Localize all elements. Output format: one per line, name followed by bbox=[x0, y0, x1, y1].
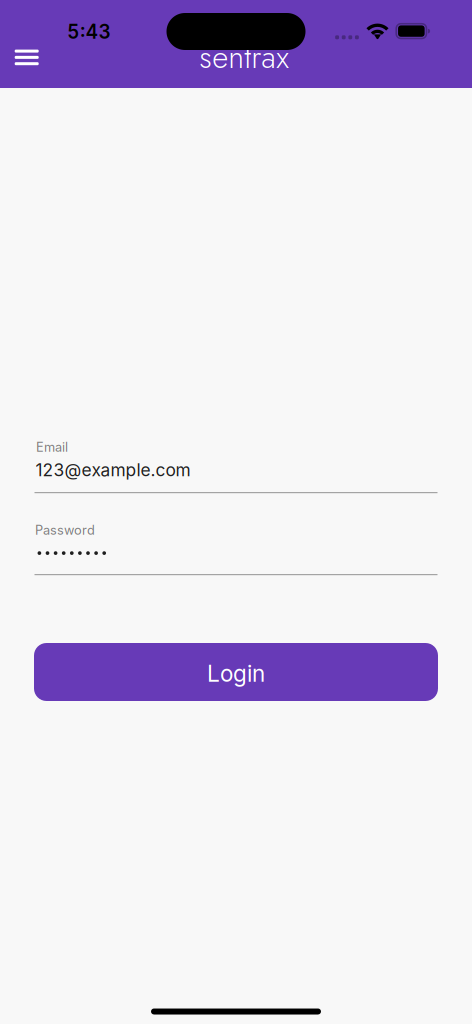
staticText: 123@example.com bbox=[35, 459, 190, 480]
button[interactable]: Login bbox=[34, 643, 438, 701]
staticText: Password bbox=[35, 522, 95, 538]
staticText: Login bbox=[207, 660, 265, 687]
button[interactable]: Open menu bbox=[1, 35, 53, 79]
staticText: 5:43 bbox=[67, 20, 110, 43]
staticText: Email bbox=[36, 439, 68, 455]
staticText: sentrax bbox=[199, 35, 289, 80]
